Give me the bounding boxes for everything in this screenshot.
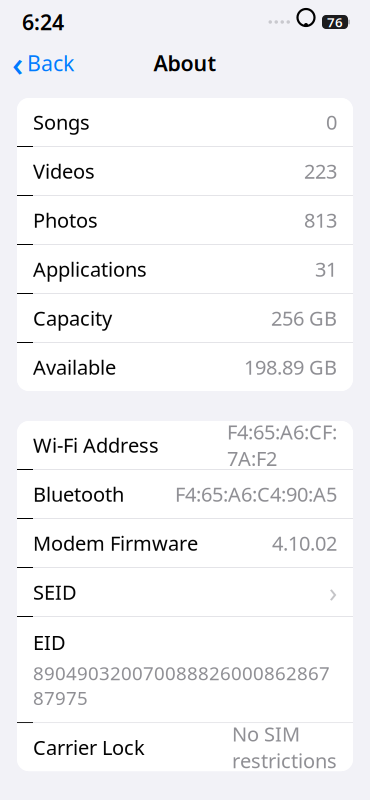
button[interactable]: Capacity [17, 294, 353, 342]
staticText: Applications [33, 256, 147, 282]
staticText: 198.89 GB [244, 354, 337, 380]
staticText: SEID [33, 579, 77, 605]
button[interactable]: ‹ [0, 44, 86, 82]
staticText: 813 [304, 207, 337, 233]
staticText: 0 [326, 109, 337, 135]
staticText: ‹ [12, 40, 23, 86]
staticText: › [329, 574, 337, 610]
staticText: About [153, 49, 216, 77]
button[interactable]: Applications [17, 245, 353, 293]
staticText: Available [33, 354, 116, 380]
staticText: 6:24 [22, 8, 64, 36]
button[interactable]: Available [17, 343, 353, 391]
button[interactable]: Modem Firmware [17, 519, 353, 567]
staticText: Photos [33, 207, 98, 233]
button[interactable]: Bluetooth [17, 470, 353, 518]
button[interactable]: SEID [17, 568, 353, 616]
staticText: 31 [315, 256, 337, 282]
button[interactable]: Songs [17, 98, 353, 146]
staticText: Bluetooth [33, 481, 124, 507]
staticText: Songs [33, 109, 90, 135]
staticText: Capacity [33, 305, 112, 331]
button[interactable]: EID [17, 617, 353, 722]
staticText: 76 [327, 13, 343, 31]
staticText: Carrier Lock [33, 734, 145, 760]
staticText: EID [33, 629, 66, 656]
staticText: Wi-Fi Address [33, 432, 159, 458]
staticText: 223 [304, 158, 337, 184]
staticText: F4:65:A6:CF:7A:F2 [227, 418, 337, 471]
button[interactable]: Carrier Lock [17, 723, 353, 771]
button[interactable]: Photos [17, 196, 353, 244]
button[interactable]: Videos [17, 147, 353, 195]
staticText: Videos [33, 158, 95, 184]
staticText: Modem Firmware [33, 530, 198, 556]
staticText: F4:65:A6:C4:90:A5 [175, 481, 337, 507]
staticText: Back [27, 49, 74, 77]
staticText: No SIM restrictions [232, 721, 337, 774]
staticText: 4.10.02 [272, 530, 337, 556]
staticText: 89049032007008882600086286787975 [33, 661, 330, 710]
button[interactable]: Wi-Fi Address [17, 421, 353, 469]
staticText: 256 GB [271, 305, 337, 331]
